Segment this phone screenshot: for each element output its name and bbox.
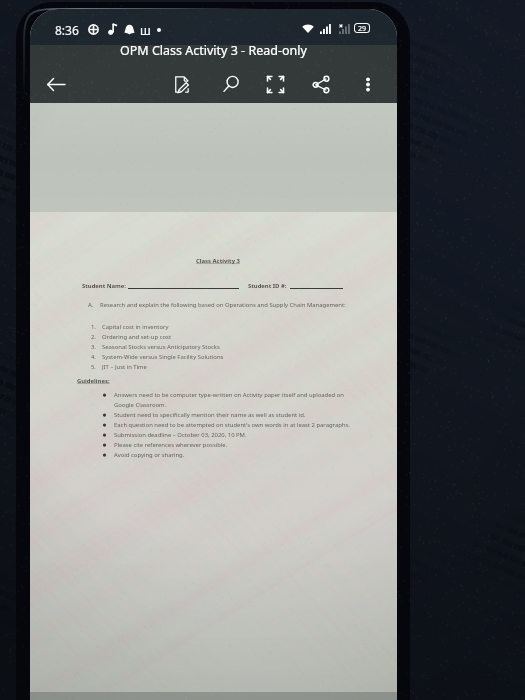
staticText: OPM Class Activity 3 - Read-only xyxy=(120,42,307,59)
staticText: 2. xyxy=(91,333,96,341)
staticText: Class Activity 3 xyxy=(196,257,240,265)
staticText: Student need to specifically mention the… xyxy=(114,411,306,419)
staticText: 1. xyxy=(91,323,96,331)
button[interactable]: Edit xyxy=(167,69,197,99)
button[interactable]: Fullscreen xyxy=(260,69,290,99)
staticText: Student Name: xyxy=(82,282,127,290)
button[interactable]: Search xyxy=(216,69,246,99)
staticText: System-Wide versus Single Facility Solut… xyxy=(102,353,224,361)
staticText: 5. xyxy=(91,363,96,371)
staticText: Capital cost in inventory xyxy=(102,323,169,331)
staticText: Student ID #: xyxy=(248,282,287,290)
staticText: 3. xyxy=(91,343,96,351)
staticText: Avoid copying or sharing. xyxy=(114,451,185,459)
staticText: JIT – Just in Time xyxy=(102,363,147,371)
staticText: Google Classroom. xyxy=(114,401,167,409)
staticText: Ordering and set-up cost xyxy=(102,333,172,341)
staticText: Submission deadline – October 03, 2020, … xyxy=(114,431,247,439)
button[interactable]: More options xyxy=(353,69,383,99)
staticText: Please cite references wherever possible… xyxy=(114,441,228,449)
staticText: Each question need to be attempted on st… xyxy=(114,421,350,429)
staticText: Seasonal Stocks versus Anticipatory Stoc… xyxy=(102,343,220,351)
staticText: Guidelines: xyxy=(77,377,110,385)
staticText: 8:36 xyxy=(55,22,79,38)
staticText: A. xyxy=(88,301,94,309)
staticText: Answers need to be computer type-written… xyxy=(114,391,344,399)
staticText: ш xyxy=(140,22,151,38)
staticText: 4. xyxy=(91,353,96,361)
staticText: Research and explain the following based… xyxy=(100,301,346,309)
staticText: 29 xyxy=(358,24,367,32)
button[interactable]: Back xyxy=(41,69,71,99)
button[interactable]: Share xyxy=(306,69,336,99)
